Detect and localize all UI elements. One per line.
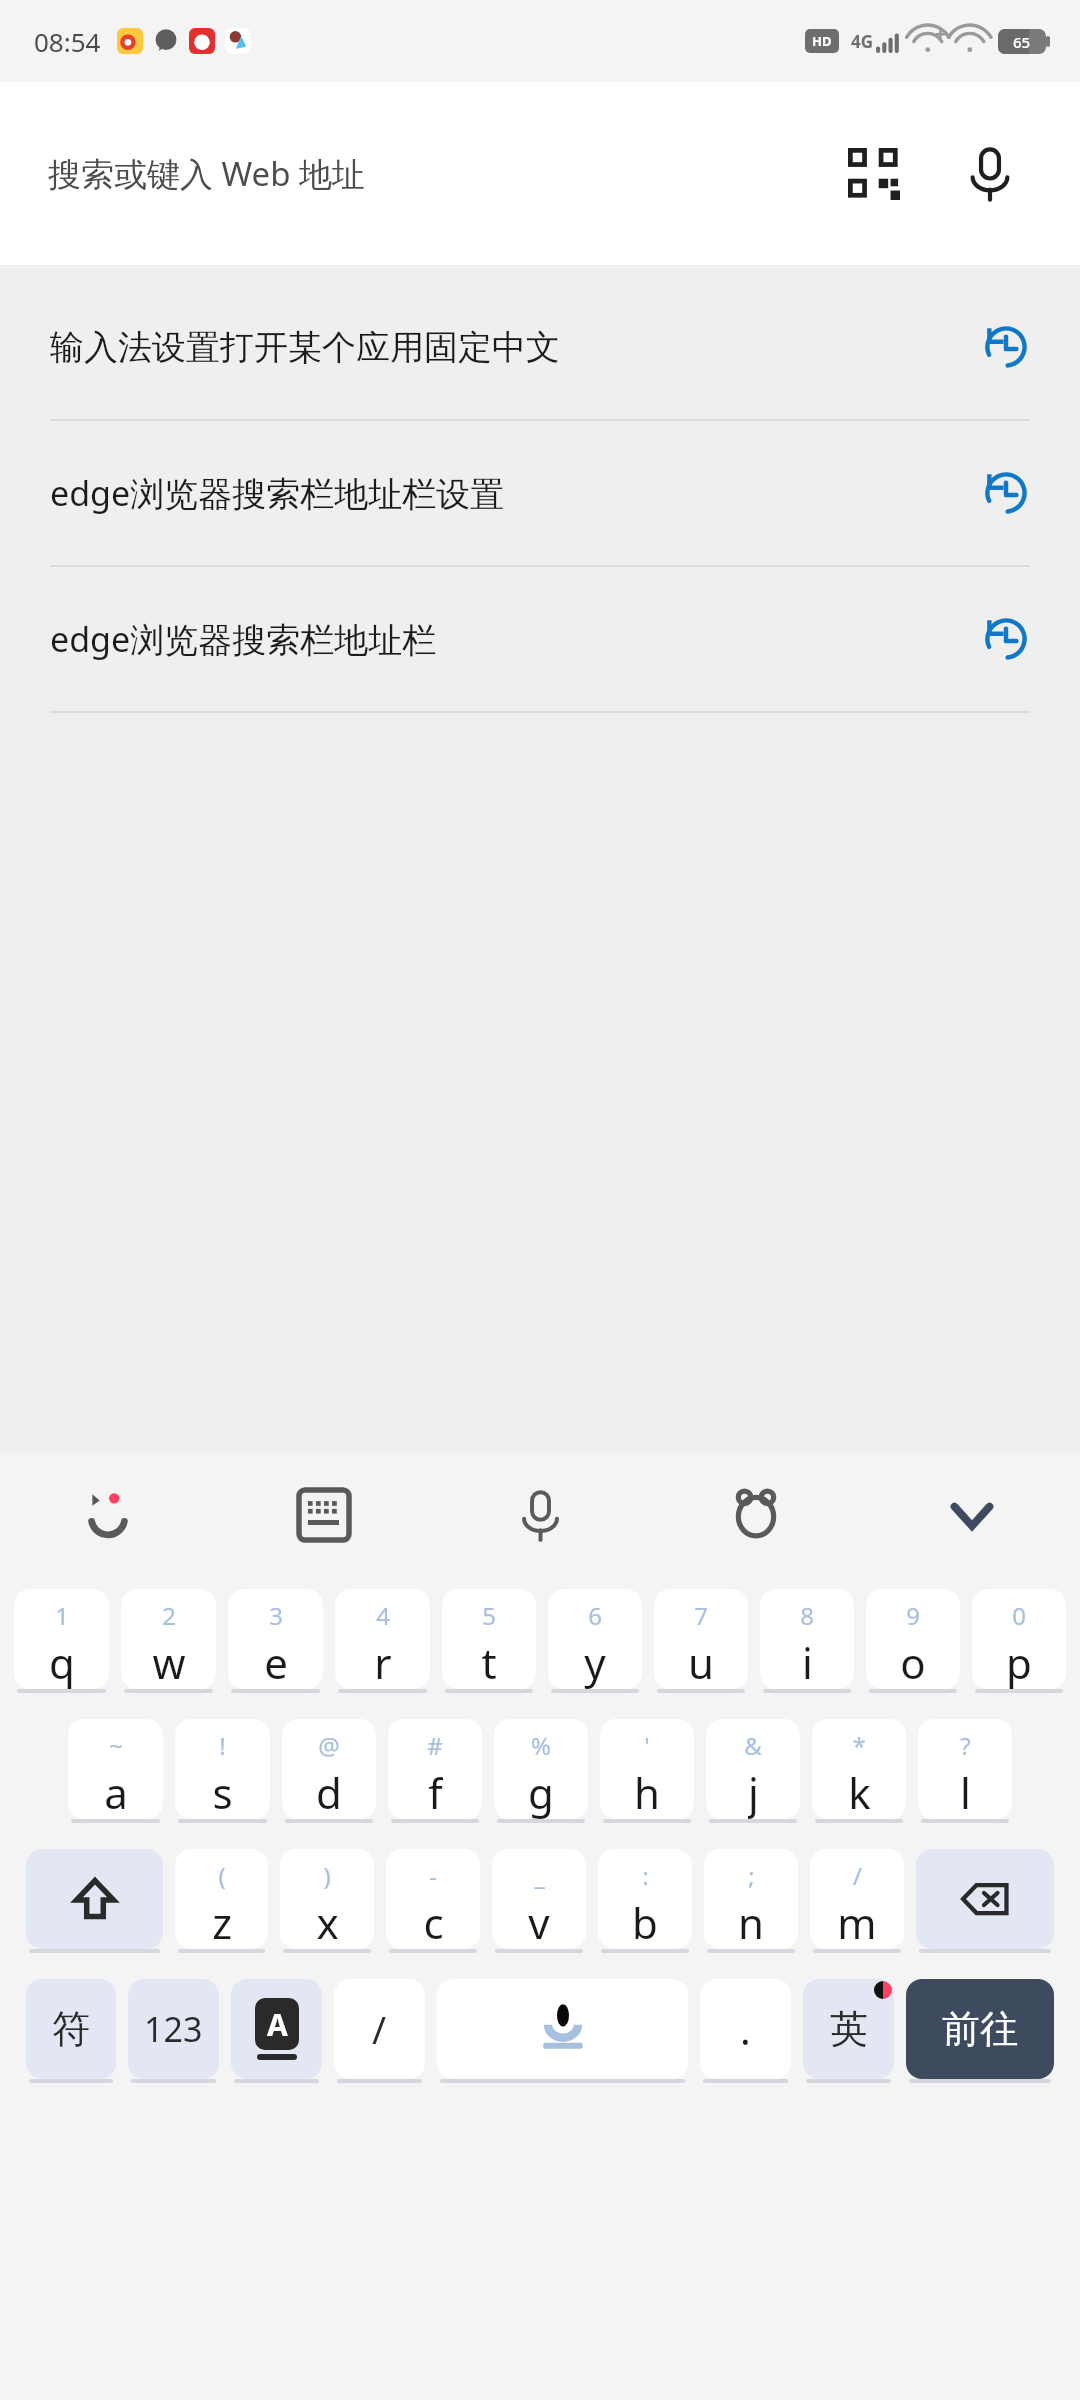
staticText: 英 [830,2005,868,2053]
staticText: x [316,1894,339,1949]
staticText: ! [219,1729,226,1762]
button[interactable]: ; [704,1849,798,1949]
button[interactable]: ( [175,1849,268,1949]
button[interactable]: . [700,1979,791,2079]
staticText: & [744,1729,762,1762]
button[interactable]: ) [280,1849,374,1949]
staticText: ( [218,1859,226,1892]
staticText: 123 [144,2006,203,2052]
button[interactable]: 键盘布局 [281,1472,367,1558]
button[interactable]: 1 [14,1589,109,1689]
staticText: w [152,1634,186,1689]
other: 中英文切换 [231,1979,322,2083]
staticText: . [740,2002,751,2056]
button[interactable]: & [706,1719,800,1819]
staticText: g [528,1764,554,1819]
button[interactable]: 百度输入法 [713,1472,799,1558]
button[interactable]: edge浏览器搜索栏地址栏设置 [0,421,1080,565]
staticText: 前往 [942,2005,1018,2053]
staticText: ? [960,1729,971,1762]
button[interactable]: 8 [760,1589,854,1689]
button[interactable]: 9 [866,1589,960,1689]
button[interactable]: 语音搜索 [940,124,1040,224]
staticText: 2 [162,1599,176,1632]
button[interactable]: : [598,1849,692,1949]
staticText: 7 [694,1599,708,1632]
staticText: / [372,2003,387,2055]
button[interactable]: 表情 [65,1472,151,1558]
staticText: ; [748,1859,755,1892]
button[interactable]: ! [175,1719,270,1819]
button[interactable]: / [810,1849,904,1949]
button[interactable]: ? [918,1719,1012,1819]
staticText: o [900,1634,926,1689]
staticText: t [481,1634,497,1689]
staticText: / [853,1859,862,1892]
staticText: _ [534,1859,545,1892]
button[interactable]: 符 [26,1979,116,2079]
staticText: 65 [1013,32,1031,52]
button[interactable]: ~ [68,1719,163,1819]
button[interactable]: 123 [128,1979,219,2079]
button[interactable]: * [812,1719,906,1819]
button[interactable]: 7 [654,1589,748,1689]
button[interactable]: ' [600,1719,694,1819]
button[interactable]: 5 [442,1589,536,1689]
staticText: 5 [482,1599,496,1632]
staticText: h [634,1764,660,1819]
button[interactable]: 0 [972,1589,1066,1689]
staticText: 符 [52,2005,90,2053]
staticText: z [212,1894,232,1949]
button[interactable]: 英 [803,1979,894,2079]
button[interactable]: # [388,1719,482,1819]
button[interactable]: % [494,1719,588,1819]
staticText: m [837,1894,877,1949]
button[interactable]: 6 [548,1589,642,1689]
staticText: ~ [109,1729,123,1762]
staticText: 输入法设置打开某个应用固定中文 [50,326,960,369]
staticText: y [584,1634,606,1689]
staticText: 6 [588,1599,602,1632]
button[interactable]: 语音输入 [497,1472,583,1558]
staticText: HD [812,32,832,50]
staticText: # [427,1729,443,1762]
button[interactable]: 3 [228,1589,323,1689]
button[interactable]: 2 [121,1589,216,1689]
staticText: ' [644,1729,650,1762]
staticText: b [632,1894,658,1949]
staticText: * [852,1729,866,1762]
staticText: c [423,1894,444,1949]
staticText: 08:54 [34,24,101,59]
staticText: 1 [55,1599,69,1632]
staticText: u [688,1634,714,1689]
staticText: ) [323,1859,331,1892]
staticText: q [49,1634,75,1689]
button[interactable]: - [386,1849,480,1949]
button[interactable] [26,1849,163,1949]
other: Backspace [916,1849,1054,1953]
button[interactable]: 4 [335,1589,430,1689]
other: Shift [26,1849,163,1953]
button[interactable] [916,1849,1054,1949]
button[interactable] [437,1979,688,2079]
staticText: % [531,1729,551,1762]
staticText: 9 [906,1599,920,1632]
staticText: p [1006,1634,1032,1689]
staticText: 3 [269,1599,283,1632]
button[interactable]: / [334,1979,425,2079]
staticText: @ [318,1729,340,1762]
staticText: e [264,1634,288,1689]
staticText: 4G [851,30,874,53]
staticText: d [316,1764,342,1819]
button[interactable]: 输入法设置打开某个应用固定中文 [0,275,1080,419]
staticText: 4 [376,1599,390,1632]
staticText: 8 [800,1599,814,1632]
button[interactable]: _ [492,1849,586,1949]
button[interactable]: 收起键盘 [929,1472,1015,1558]
button[interactable]: 扫描二维码 [824,124,924,224]
button[interactable]: A [231,1979,322,2079]
button[interactable]: @ [282,1719,376,1819]
button[interactable]: 前往 [906,1979,1054,2079]
button[interactable]: edge浏览器搜索栏地址栏 [0,567,1080,711]
staticText: v [528,1894,550,1949]
